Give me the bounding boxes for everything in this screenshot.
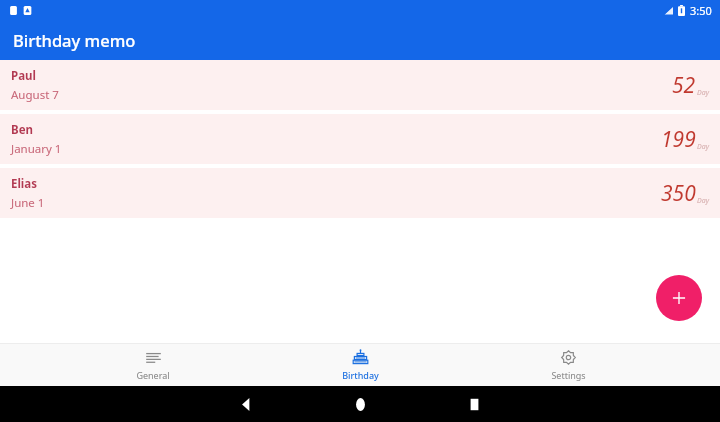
staticText: Day — [697, 142, 709, 152]
button[interactable]: Recents — [417, 398, 531, 411]
button[interactable]: Home — [303, 398, 417, 411]
staticText: Birthday — [342, 369, 379, 381]
button[interactable]: Add birthday — [656, 275, 702, 321]
staticText: Elias — [11, 176, 37, 192]
staticText: 52 — [672, 71, 696, 100]
button[interactable]: General — [98, 344, 208, 386]
staticText: Paul — [11, 68, 36, 84]
staticText: Settings — [551, 369, 586, 381]
button[interactable]: Back — [189, 398, 303, 411]
button[interactable]: Paul — [0, 60, 720, 110]
staticText: 3:50 — [690, 3, 712, 18]
staticText: June 1 — [11, 195, 45, 211]
button[interactable]: Elias — [0, 168, 720, 218]
button[interactable]: Settings — [513, 344, 623, 386]
button[interactable]: Ben — [0, 114, 720, 164]
staticText: 350 — [661, 179, 696, 208]
staticText: Day — [697, 196, 709, 206]
staticText: January 1 — [11, 141, 62, 157]
staticText: 199 — [661, 125, 696, 154]
staticText: August 7 — [11, 87, 59, 103]
staticText: Birthday memo — [13, 29, 136, 51]
button[interactable]: Birthday — [305, 344, 415, 386]
staticText: Day — [697, 88, 709, 98]
staticText: Ben — [11, 122, 33, 138]
staticText: General — [136, 369, 170, 381]
